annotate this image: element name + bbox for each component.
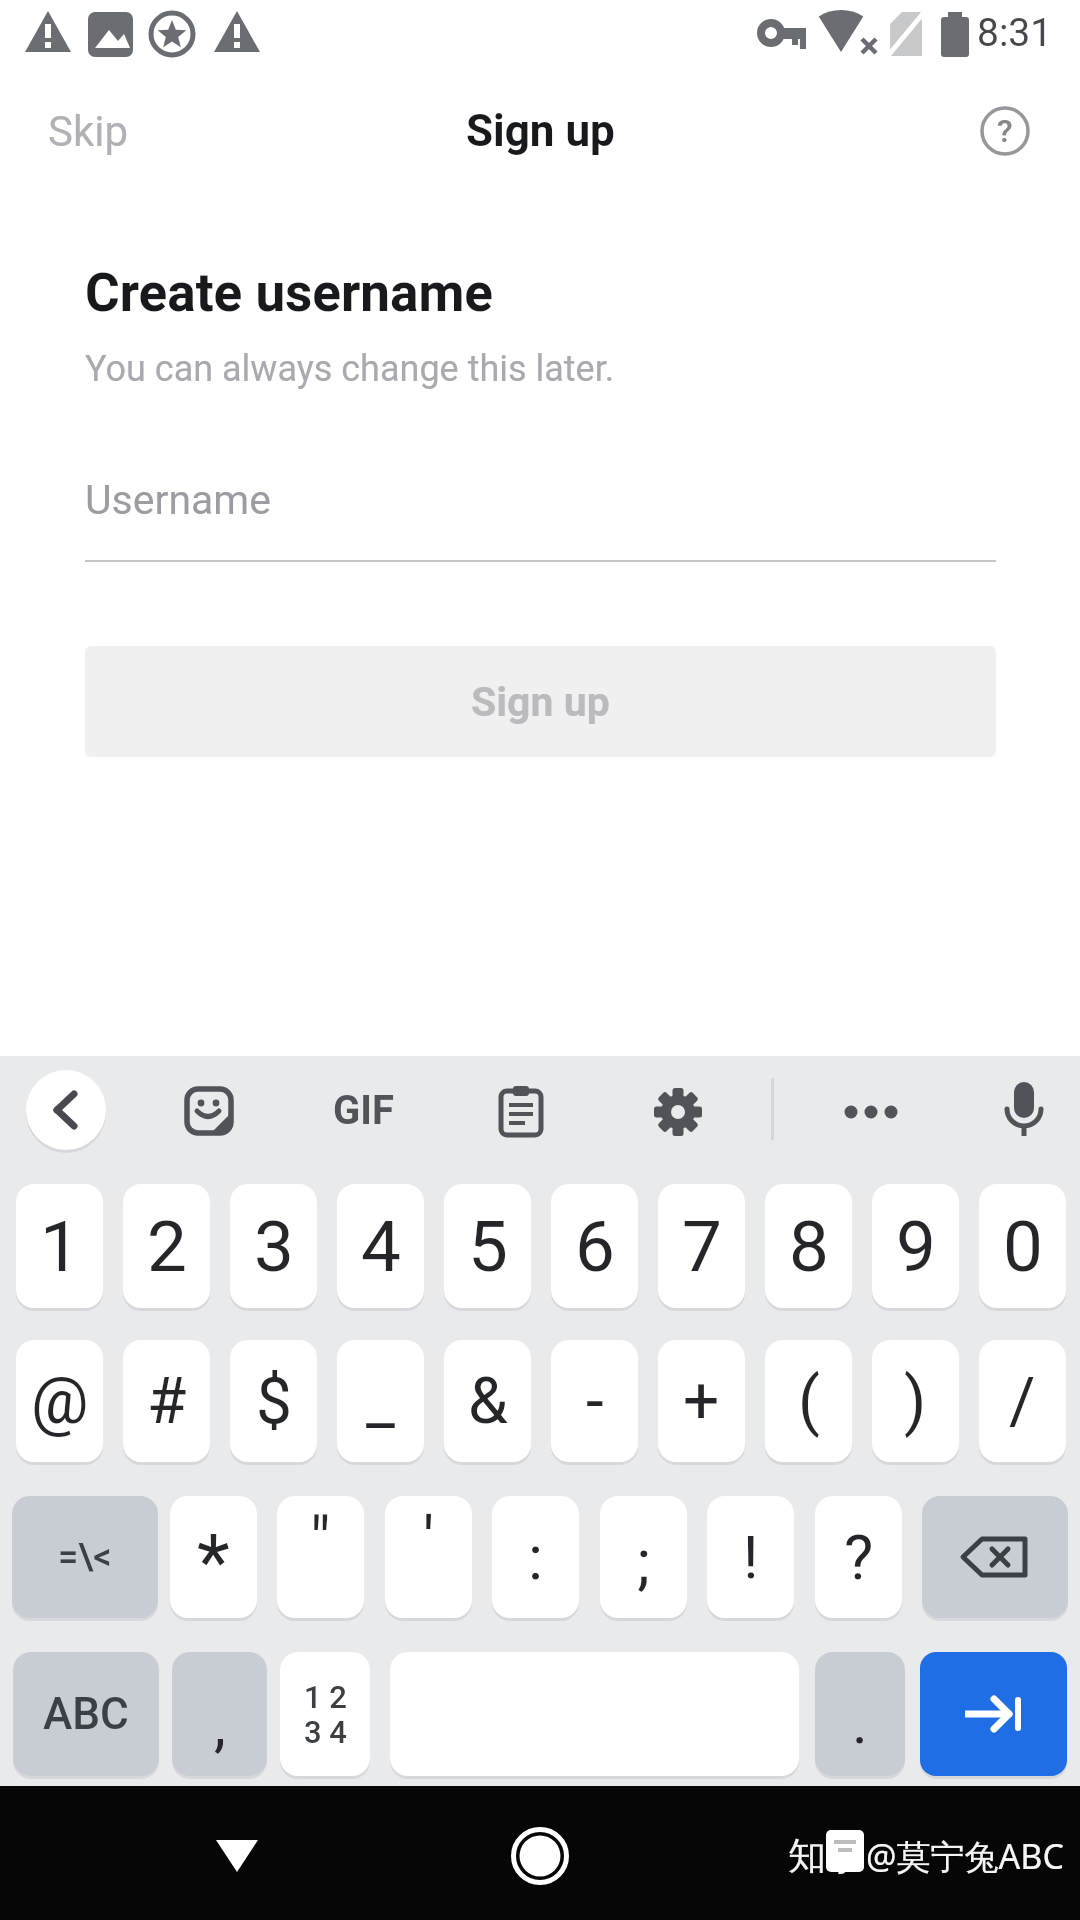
button[interactable] — [920, 1652, 1067, 1776]
button[interactable] — [490, 1806, 590, 1906]
button[interactable]: 8 — [765, 1184, 852, 1308]
staticText: * — [197, 1517, 230, 1606]
staticText: . — [852, 1687, 868, 1757]
staticText: + — [683, 1364, 720, 1439]
button[interactable]: . — [815, 1652, 905, 1776]
staticText: 5 — [468, 1205, 508, 1288]
button[interactable]: # — [123, 1340, 210, 1462]
button[interactable]: Skip — [30, 95, 160, 167]
staticText: ? — [844, 1521, 874, 1594]
button[interactable]: ( — [765, 1340, 852, 1462]
button[interactable]: ABC — [13, 1652, 159, 1776]
staticText: " — [310, 1504, 331, 1579]
staticText: Sign up — [466, 105, 615, 157]
button[interactable]: , — [172, 1652, 267, 1776]
button[interactable] — [650, 1084, 706, 1140]
button[interactable]: @ — [16, 1340, 103, 1462]
button[interactable]: ' — [385, 1496, 472, 1618]
button[interactable]: 2 — [123, 1184, 210, 1308]
button[interactable]: ! — [707, 1496, 794, 1618]
button[interactable]: * — [170, 1496, 257, 1618]
button[interactable]: ? — [968, 94, 1042, 168]
button[interactable]: Username — [85, 450, 996, 562]
staticText: Skip — [48, 107, 129, 156]
button[interactable]: ) — [872, 1340, 959, 1462]
button[interactable] — [996, 1080, 1052, 1142]
button[interactable]: 1 2 3 4 — [280, 1652, 370, 1776]
staticText: 4 — [361, 1205, 401, 1288]
button[interactable]: Sign up — [85, 646, 996, 757]
staticText: 8:31 — [977, 10, 1053, 56]
staticText: GIF — [333, 1087, 394, 1134]
staticText: ; — [637, 1525, 651, 1598]
staticText: ) — [904, 1364, 927, 1439]
button[interactable]: 9 — [872, 1184, 959, 1308]
staticText: 1 — [40, 1205, 80, 1288]
button[interactable]: ? — [815, 1496, 902, 1618]
button[interactable] — [922, 1496, 1068, 1618]
staticText: _ — [366, 1364, 395, 1439]
button[interactable]: 0 — [979, 1184, 1066, 1308]
staticText: Create username — [85, 262, 493, 324]
staticText: 6 — [575, 1205, 615, 1288]
staticText: 3 — [254, 1205, 294, 1288]
button[interactable]: : — [492, 1496, 579, 1618]
button[interactable] — [830, 1085, 912, 1137]
staticText: 1 2 3 4 — [304, 1679, 347, 1750]
button[interactable] — [495, 1085, 547, 1137]
button[interactable]: 1 — [16, 1184, 103, 1308]
button[interactable]: 3 — [230, 1184, 317, 1308]
staticText: ( — [798, 1364, 820, 1439]
staticText: ? — [997, 112, 1013, 150]
button[interactable]: GIF — [300, 1080, 426, 1140]
staticText: 2 — [147, 1205, 187, 1288]
staticText: 知乎 — [788, 1832, 864, 1880]
staticText: ' — [423, 1504, 435, 1579]
button[interactable]: _ — [337, 1340, 424, 1462]
staticText: 8 — [789, 1205, 829, 1288]
button[interactable]: + — [658, 1340, 745, 1462]
staticText: $ — [256, 1364, 292, 1439]
button[interactable]: ; — [600, 1496, 687, 1618]
button[interactable]: " — [277, 1496, 364, 1618]
staticText: / — [1009, 1364, 1036, 1439]
button[interactable] — [184, 1086, 234, 1136]
staticText: You can always change this later. — [85, 348, 615, 390]
staticText: # — [147, 1364, 187, 1439]
button[interactable]: / — [979, 1340, 1066, 1462]
staticText: Username — [85, 476, 272, 524]
staticText: @莫宁兔ABC — [866, 1833, 1064, 1879]
staticText: =\< — [58, 1536, 112, 1578]
button[interactable]: - — [551, 1340, 638, 1462]
staticText: ! — [743, 1522, 759, 1592]
staticText: ABC — [43, 1688, 129, 1740]
button[interactable]: 7 — [658, 1184, 745, 1308]
staticText: 9 — [896, 1205, 936, 1288]
staticText: , — [214, 1689, 226, 1759]
button[interactable]: $ — [230, 1340, 317, 1462]
button[interactable]: =\< — [12, 1496, 158, 1618]
button[interactable] — [187, 1806, 287, 1906]
staticText: - — [586, 1364, 604, 1439]
staticText: 7 — [682, 1205, 722, 1288]
staticText: 0 — [1003, 1205, 1043, 1288]
button[interactable] — [26, 1070, 106, 1150]
staticText: & — [468, 1364, 508, 1439]
staticText: Sign up — [471, 678, 610, 726]
button[interactable]: 5 — [444, 1184, 531, 1308]
button[interactable]: 6 — [551, 1184, 638, 1308]
button[interactable]: 4 — [337, 1184, 424, 1308]
staticText: : — [528, 1521, 544, 1594]
staticText: @ — [31, 1364, 89, 1439]
button[interactable]: & — [444, 1340, 531, 1462]
